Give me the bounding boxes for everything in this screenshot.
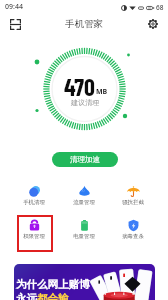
- button[interactable]: 权限管理: [14, 219, 54, 245]
- button[interactable]: Scan code: [5, 14, 25, 34]
- staticText: 为什么网上赌博: [16, 278, 90, 291]
- staticText: 手机清理: [23, 199, 45, 206]
- staticText: 权限管理: [23, 233, 45, 240]
- staticText: MB: [96, 87, 108, 97]
- button[interactable]: 清理加速: [52, 152, 118, 167]
- button[interactable]: 骚扰拦截: [113, 185, 153, 211]
- button[interactable]: 为什么网上赌博: [14, 264, 155, 300]
- staticText: 68: [156, 3, 164, 12]
- staticText: 都会输: [37, 292, 69, 300]
- staticText: 流量管理: [73, 199, 95, 206]
- button[interactable]: 病毒查杀: [113, 219, 153, 245]
- button[interactable]: Settings: [143, 14, 163, 34]
- staticText: 建议清理: [71, 98, 99, 107]
- staticText: 清理加速: [70, 155, 100, 164]
- staticText: 永远: [16, 292, 37, 300]
- staticText: 电量管理: [73, 233, 95, 240]
- staticText: 09:44: [5, 2, 23, 12]
- button[interactable]: 电量管理: [64, 219, 104, 245]
- staticText: 病毒查杀: [122, 233, 144, 240]
- staticText: 手机管家: [65, 18, 103, 30]
- button[interactable]: 手机清理: [14, 185, 54, 211]
- button[interactable]: 流量管理: [64, 185, 104, 211]
- staticText: 470: [64, 72, 95, 101]
- staticText: 骚扰拦截: [122, 199, 144, 206]
